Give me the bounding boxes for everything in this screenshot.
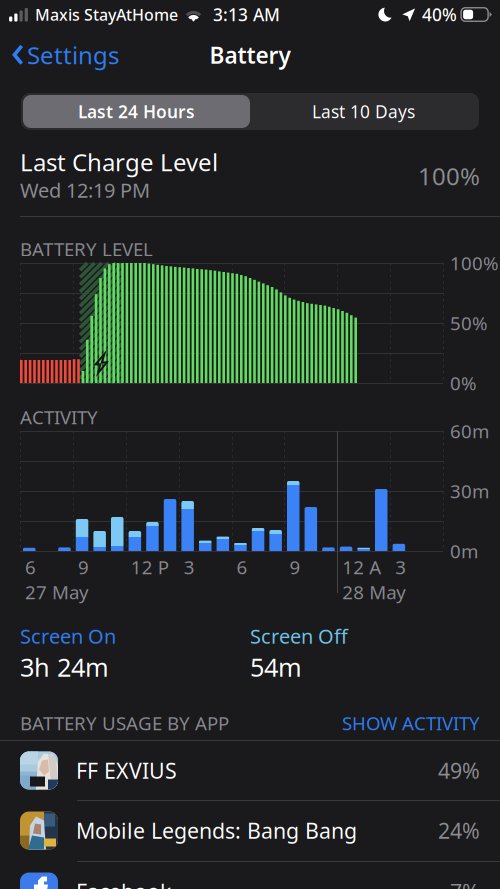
- staticText: 100%: [418, 160, 480, 192]
- staticText: 9: [289, 555, 300, 579]
- button[interactable]: SHOW ACTIVITY: [20, 703, 480, 743]
- staticText: 12 P: [131, 555, 169, 579]
- staticText: 3h 24m: [20, 650, 109, 684]
- staticText: SHOW ACTIVITY: [342, 711, 480, 735]
- staticText: 60m: [450, 419, 489, 443]
- staticText: 3: [395, 555, 406, 579]
- button[interactable]: Settings: [2, 33, 129, 77]
- staticText: 0m: [450, 539, 478, 563]
- staticText: 28 May: [342, 580, 406, 604]
- staticText: Last Charge Level: [20, 146, 218, 178]
- staticText: 40%: [422, 3, 457, 26]
- button[interactable]: Mobile Legends: Bang Bang: [0, 800, 500, 860]
- staticText: BATTERY USAGE BY APP: [20, 711, 229, 735]
- staticText: Facebook: [76, 877, 171, 889]
- staticText: Battery: [209, 40, 290, 70]
- staticText: 54m: [250, 650, 302, 684]
- staticText: Mobile Legends: Bang Bang: [76, 816, 357, 845]
- staticText: Screen Off: [250, 623, 348, 649]
- staticText: 50%: [450, 311, 488, 335]
- staticText: Settings: [27, 39, 119, 71]
- button[interactable]: Facebook: [0, 861, 500, 889]
- staticText: 3: [184, 555, 195, 579]
- staticText: Last 24 Hours: [78, 100, 195, 123]
- staticText: 0%: [450, 371, 477, 395]
- staticText: 3:13 AM: [213, 3, 280, 26]
- staticText: Last 10 Days: [312, 100, 415, 123]
- staticText: 9: [78, 555, 89, 579]
- staticText: ACTIVITY: [20, 405, 98, 429]
- staticText: 12 A: [342, 555, 381, 579]
- staticText: Maxis StayAtHome: [35, 4, 178, 25]
- staticText: BATTERY LEVEL: [20, 237, 153, 261]
- staticText: FF EXVIUS: [76, 756, 177, 785]
- staticText: 6: [25, 555, 36, 579]
- button[interactable]: Last 24 Hours: [23, 95, 250, 128]
- staticText: 24%: [438, 816, 480, 845]
- staticText: 27 May: [25, 580, 89, 604]
- staticText: 7%: [450, 877, 480, 889]
- staticText: 100%: [450, 251, 499, 275]
- button[interactable]: Last 10 Days: [250, 95, 477, 128]
- staticText: Wed 12:19 PM: [20, 177, 150, 203]
- staticText: 6: [236, 555, 247, 579]
- button[interactable]: FF EXVIUS: [0, 740, 500, 800]
- staticText: 30m: [450, 479, 489, 503]
- staticText: 49%: [438, 756, 480, 785]
- staticText: Screen On: [20, 623, 116, 649]
